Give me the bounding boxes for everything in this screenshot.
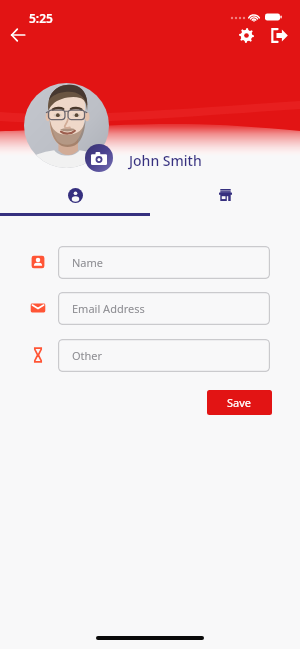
staticText: 5:25 (29, 10, 53, 26)
button[interactable]: Profile tab (0, 176, 150, 214)
button[interactable]: Email Address (58, 292, 270, 325)
button[interactable]: Save (207, 390, 272, 415)
staticText: Name (72, 255, 104, 270)
button[interactable]: Change photo (85, 144, 113, 172)
button[interactable]: Other (58, 339, 270, 372)
button[interactable]: Store tab (150, 176, 300, 214)
button[interactable]: Settings (234, 23, 258, 47)
button[interactable]: Back (6, 23, 30, 47)
button[interactable]: Name (58, 246, 270, 279)
staticText: Other (72, 348, 103, 363)
staticText: Email Address (72, 301, 145, 316)
staticText: John Smith (129, 151, 202, 170)
staticText: Save (227, 395, 252, 410)
button[interactable]: Profile photo (24, 83, 109, 168)
button[interactable]: Log out (267, 23, 291, 47)
